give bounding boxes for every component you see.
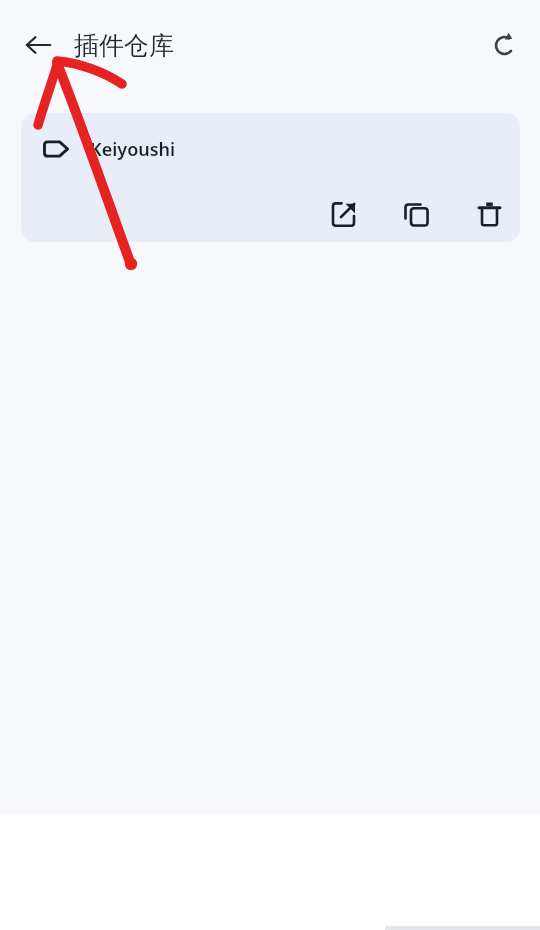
button[interactable]: Copy [392, 190, 440, 238]
staticText: Keiyoushi [90, 137, 176, 162]
staticText: 插件仓库 [74, 30, 174, 61]
button[interactable]: Refresh [480, 21, 528, 69]
button[interactable]: Open in browser [319, 190, 367, 238]
button[interactable]: Back [14, 21, 62, 69]
button[interactable]: Keiyoushi [21, 113, 520, 242]
button[interactable]: Delete [465, 190, 513, 238]
